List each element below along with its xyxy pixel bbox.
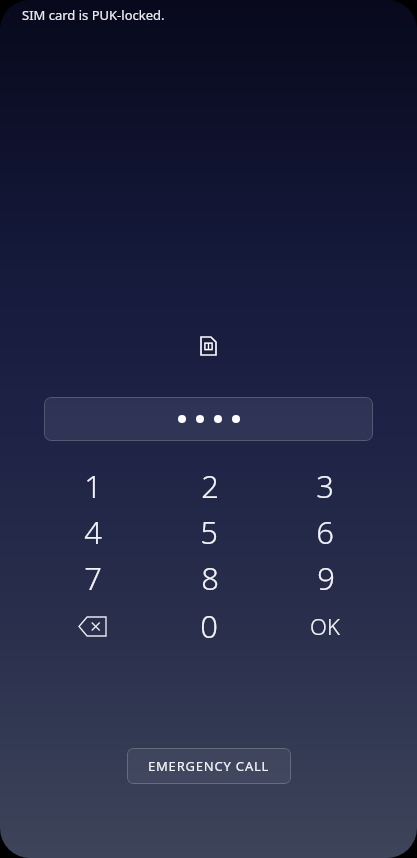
button[interactable]: 0: [151, 603, 267, 649]
staticText: 8: [201, 557, 219, 599]
button[interactable]: [44, 397, 373, 441]
button[interactable]: 6: [267, 511, 383, 557]
staticText: 6: [316, 511, 334, 553]
staticText: 2: [201, 465, 219, 507]
button[interactable]: OK: [267, 603, 383, 649]
button[interactable]: 8: [151, 557, 267, 603]
staticText: 9: [317, 557, 335, 599]
staticText: 1: [84, 465, 102, 507]
button[interactable]: 1: [34, 465, 151, 511]
staticText: OK: [310, 611, 340, 641]
staticText: 0: [200, 605, 218, 647]
staticText: EMERGENCY CALL: [148, 757, 270, 775]
button[interactable]: 4: [34, 511, 151, 557]
staticText: SIM card is PUK-locked.: [22, 6, 165, 24]
other: SIM card: [201, 337, 216, 355]
button[interactable]: 2: [151, 465, 267, 511]
staticText: 7: [84, 557, 102, 599]
button[interactable]: EMERGENCY CALL: [127, 748, 291, 784]
button[interactable]: 9: [267, 557, 383, 603]
button[interactable]: Backspace: [34, 603, 151, 649]
button[interactable]: 3: [267, 465, 383, 511]
staticText: 4: [84, 511, 102, 553]
staticText: 3: [316, 465, 334, 507]
button[interactable]: 5: [151, 511, 267, 557]
button[interactable]: 7: [34, 557, 151, 603]
staticText: 5: [200, 511, 218, 553]
